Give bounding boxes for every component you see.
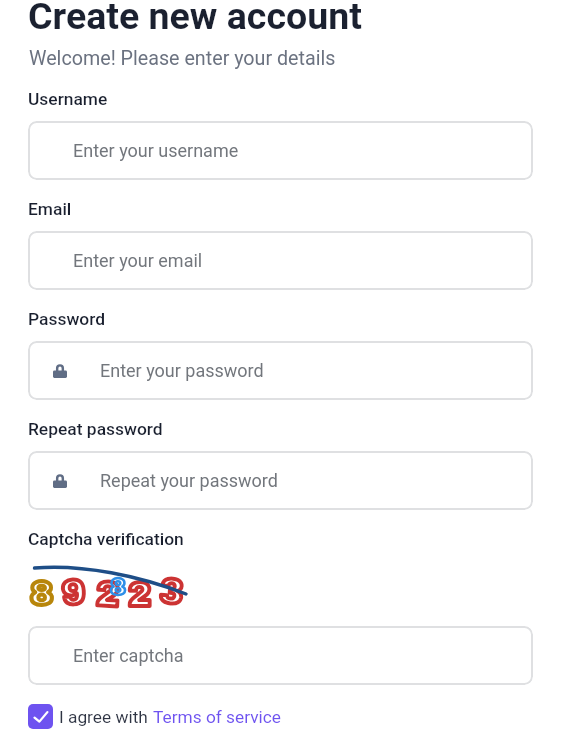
staticText: Enter captcha bbox=[73, 645, 184, 666]
staticText: Email bbox=[28, 199, 72, 219]
staticText: Captcha verification bbox=[28, 529, 184, 549]
button[interactable]: Repeat your password bbox=[28, 451, 533, 510]
staticText: Enter your email bbox=[73, 250, 203, 271]
staticText: Enter your password bbox=[100, 360, 264, 381]
staticText: 2 bbox=[128, 575, 152, 613]
staticText: Repeat your password bbox=[100, 470, 278, 491]
staticText: 3 bbox=[158, 571, 186, 611]
staticText: I agree with bbox=[59, 707, 153, 727]
button[interactable]: Enter your password bbox=[28, 341, 533, 400]
staticText: Username bbox=[28, 89, 108, 109]
button[interactable]: Terms of service bbox=[153, 707, 281, 727]
button[interactable]: Enter your email bbox=[28, 231, 533, 290]
button[interactable]: Enter your username bbox=[28, 121, 533, 180]
staticText: 8 bbox=[30, 574, 54, 612]
staticText: Welcome! Please enter your details bbox=[29, 47, 336, 70]
staticText: 8 bbox=[110, 574, 127, 600]
staticText: Enter your username bbox=[73, 140, 239, 161]
staticText: Repeat password bbox=[28, 419, 163, 439]
staticText: Create new account bbox=[28, 0, 362, 38]
staticText: 2 bbox=[95, 574, 121, 614]
button[interactable]: I agree with Terms of service bbox=[28, 704, 53, 729]
button[interactable]: Enter captcha bbox=[28, 626, 533, 685]
staticText: 9 bbox=[61, 572, 87, 612]
staticText: Password bbox=[28, 309, 106, 329]
